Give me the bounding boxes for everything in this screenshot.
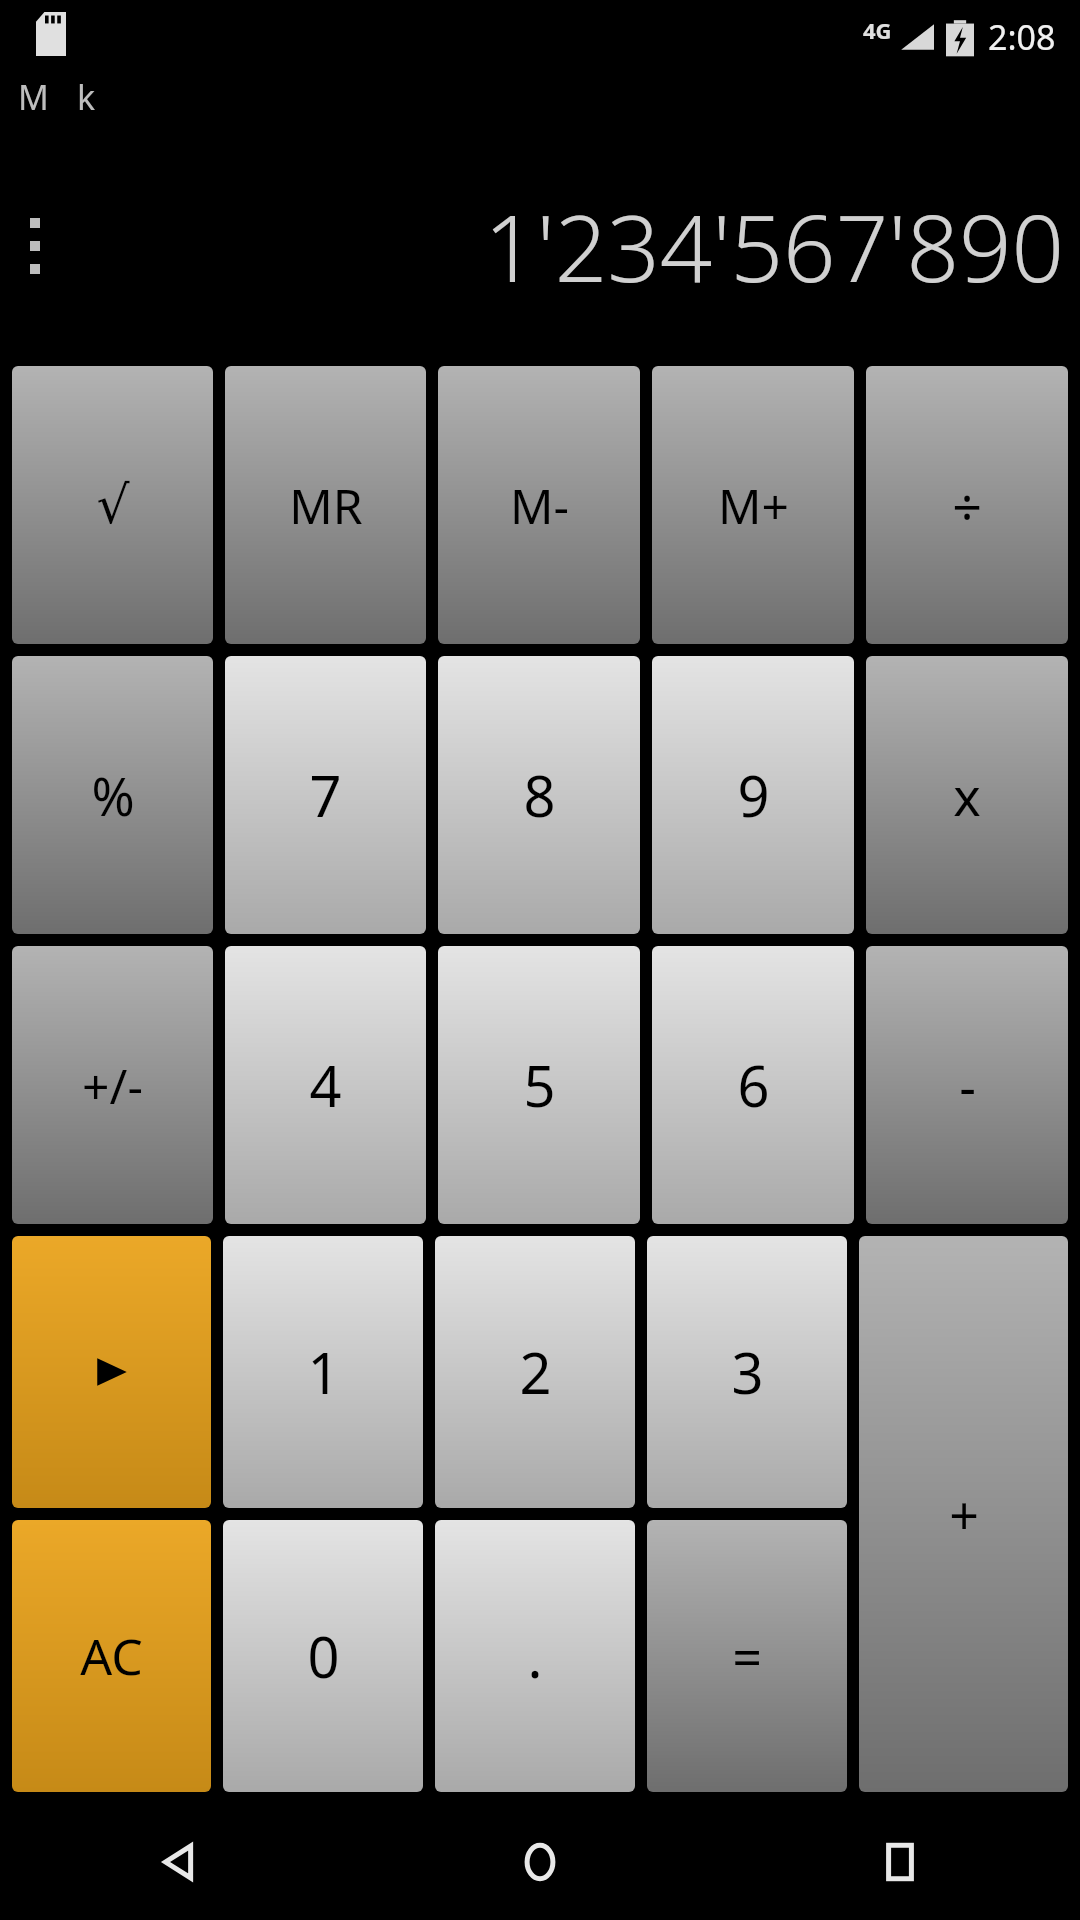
- staticText: ÷: [952, 470, 982, 541]
- button[interactable]: 5: [438, 946, 640, 1224]
- button[interactable]: M+: [652, 366, 854, 644]
- staticText: 1'234'567'890: [484, 184, 1064, 309]
- button[interactable]: Home: [360, 1804, 720, 1920]
- button[interactable]: Enter: [12, 1236, 211, 1508]
- staticText: MR: [289, 473, 363, 538]
- button[interactable]: x: [866, 656, 1068, 934]
- staticText: 2:08: [988, 14, 1056, 60]
- button[interactable]: Back: [0, 1804, 360, 1920]
- button[interactable]: %: [12, 656, 213, 934]
- staticText: 3: [731, 1334, 764, 1410]
- staticText: 4: [309, 1047, 342, 1123]
- button[interactable]: +: [859, 1236, 1068, 1792]
- button[interactable]: 3: [647, 1236, 847, 1508]
- button[interactable]: 6: [652, 946, 854, 1224]
- staticText: √: [96, 475, 130, 536]
- staticText: AC: [80, 1622, 143, 1690]
- staticText: -: [959, 1050, 976, 1121]
- button[interactable]: -: [866, 946, 1068, 1224]
- staticText: M-: [510, 473, 569, 538]
- button[interactable]: +/-: [12, 946, 213, 1224]
- staticText: M+: [718, 473, 789, 538]
- button[interactable]: MR: [225, 366, 426, 644]
- staticText: x: [953, 760, 981, 831]
- button[interactable]: 4: [225, 946, 426, 1224]
- button[interactable]: =: [647, 1520, 847, 1792]
- staticText: 4G: [863, 15, 892, 45]
- button[interactable]: 9: [652, 656, 854, 934]
- staticText: .: [527, 1618, 543, 1694]
- staticText: 6: [737, 1047, 770, 1123]
- staticText: M: [18, 74, 49, 120]
- staticText: 9: [737, 757, 770, 833]
- button[interactable]: 8: [438, 656, 640, 934]
- staticText: 8: [523, 757, 556, 833]
- button[interactable]: 2: [435, 1236, 635, 1508]
- staticText: 2: [519, 1334, 552, 1410]
- button[interactable]: Recents: [720, 1804, 1080, 1920]
- button[interactable]: √: [12, 366, 213, 644]
- staticText: +/-: [82, 1053, 143, 1118]
- staticText: 0: [307, 1618, 340, 1694]
- staticText: %: [91, 760, 135, 831]
- button[interactable]: M-: [438, 366, 640, 644]
- button[interactable]: ÷: [866, 366, 1068, 644]
- button[interactable]: 1: [223, 1236, 423, 1508]
- staticText: =: [732, 1621, 762, 1692]
- staticText: k: [77, 74, 96, 120]
- button[interactable]: AC: [12, 1520, 211, 1792]
- staticText: 7: [309, 757, 342, 833]
- button[interactable]: More options: [8, 201, 62, 291]
- staticText: 5: [523, 1047, 556, 1123]
- button[interactable]: .: [435, 1520, 635, 1792]
- staticText: +: [949, 1479, 979, 1550]
- staticText: 1: [307, 1334, 340, 1410]
- button[interactable]: 0: [223, 1520, 423, 1792]
- button[interactable]: 7: [225, 656, 426, 934]
